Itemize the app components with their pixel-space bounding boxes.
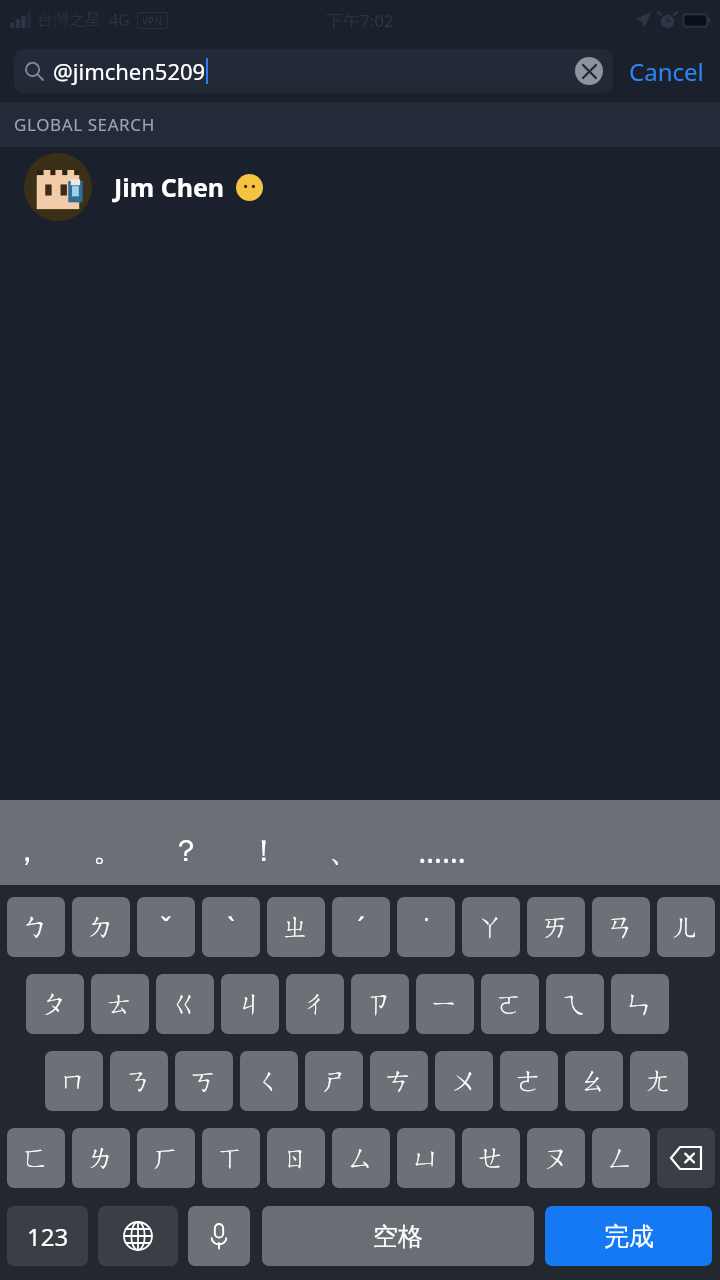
- button[interactable]: ㄗ: [351, 974, 409, 1034]
- button[interactable]: ㄌ: [72, 1128, 130, 1188]
- staticText: ㄍ: [171, 987, 199, 1021]
- button[interactable]: ㄣ: [611, 974, 669, 1034]
- button[interactable]: ㄤ: [630, 1051, 688, 1111]
- staticText: ㄅ: [22, 910, 50, 944]
- button[interactable]: ㄠ: [565, 1051, 623, 1111]
- staticText: ˙: [424, 909, 429, 946]
- staticText: ㄗ: [366, 987, 394, 1021]
- button[interactable]: ㄓ: [267, 897, 325, 957]
- staticText: ㄛ: [496, 987, 524, 1021]
- staticText: ㄇ: [60, 1064, 88, 1098]
- staticText: ㄥ: [607, 1141, 635, 1175]
- button[interactable]: ㄒ: [202, 1128, 260, 1188]
- button[interactable]: ˙: [397, 897, 455, 957]
- button[interactable]: 、: [318, 820, 370, 882]
- button[interactable]: ㄐ: [221, 974, 279, 1034]
- staticText: ㄒ: [217, 1141, 245, 1175]
- button[interactable]: ㄉ: [72, 897, 130, 957]
- staticText: GLOBAL SEARCH: [14, 113, 155, 136]
- staticText: Cancel: [629, 55, 704, 88]
- button[interactable]: Jim Chen: [0, 147, 720, 227]
- button[interactable]: ㄊ: [91, 974, 149, 1034]
- button[interactable]: Change keyboard language: [98, 1206, 178, 1266]
- button[interactable]: ㄝ: [462, 1128, 520, 1188]
- staticText: ㄎ: [190, 1064, 218, 1098]
- button[interactable]: ㄢ: [592, 897, 650, 957]
- staticText: ，: [12, 832, 42, 870]
- button[interactable]: ㄔ: [286, 974, 344, 1034]
- staticText: 。: [93, 832, 123, 870]
- button[interactable]: ？: [160, 820, 212, 882]
- button[interactable]: 空格: [262, 1206, 534, 1266]
- button[interactable]: ㄚ: [462, 897, 520, 957]
- staticText: ㄚ: [477, 910, 505, 944]
- button[interactable]: ˇ: [137, 897, 195, 957]
- button[interactable]: ㄏ: [137, 1128, 195, 1188]
- button[interactable]: Clear text: [575, 57, 603, 85]
- button[interactable]: ㄛ: [481, 974, 539, 1034]
- staticText: ㄋ: [125, 1064, 153, 1098]
- staticText: Jim Chen: [114, 170, 225, 204]
- button[interactable]: Backspace: [657, 1128, 715, 1188]
- staticText: @jimchen5209: [53, 56, 206, 86]
- staticText: ㄘ: [385, 1064, 413, 1098]
- staticText: ㄠ: [580, 1064, 608, 1098]
- staticText: 完成: [604, 1221, 654, 1252]
- button[interactable]: ㄘ: [370, 1051, 428, 1111]
- staticText: ㄖ: [282, 1141, 310, 1175]
- staticText: ㄩ: [412, 1141, 440, 1175]
- button[interactable]: ㄕ: [305, 1051, 363, 1111]
- button[interactable]: @jimchen5209: [14, 49, 613, 93]
- button[interactable]: ˋ: [202, 897, 260, 957]
- staticText: ㄓ: [282, 910, 310, 944]
- staticText: 4G: [109, 9, 130, 31]
- staticText: ˇ: [160, 909, 172, 946]
- button[interactable]: ㄋ: [110, 1051, 168, 1111]
- button[interactable]: ㄆ: [26, 974, 84, 1034]
- staticText: ㄜ: [515, 1064, 543, 1098]
- button[interactable]: ㄨ: [435, 1051, 493, 1111]
- button[interactable]: ！: [238, 820, 290, 882]
- staticText: VPN: [142, 14, 163, 28]
- button[interactable]: ㄇ: [45, 1051, 103, 1111]
- button[interactable]: 。: [82, 820, 134, 882]
- staticText: 、: [329, 832, 359, 870]
- button[interactable]: ……: [416, 820, 468, 882]
- staticText: 下午7:02: [326, 9, 394, 32]
- staticText: ……: [418, 831, 466, 872]
- button[interactable]: ，: [1, 820, 53, 882]
- button[interactable]: ㄑ: [240, 1051, 298, 1111]
- button[interactable]: ㄅ: [7, 897, 65, 957]
- staticText: ㄉ: [87, 910, 115, 944]
- button[interactable]: Voice input: [188, 1206, 250, 1266]
- button[interactable]: Cancel: [613, 55, 720, 88]
- button[interactable]: ㄧ: [416, 974, 474, 1034]
- staticText: ㄡ: [542, 1141, 570, 1175]
- staticText: ㄙ: [347, 1141, 375, 1175]
- staticText: ㄌ: [87, 1141, 115, 1175]
- button[interactable]: ˊ: [332, 897, 390, 957]
- staticText: ㄐ: [236, 987, 264, 1021]
- button[interactable]: ㄟ: [546, 974, 604, 1034]
- staticText: ？: [171, 832, 201, 870]
- button[interactable]: 完成: [545, 1206, 712, 1266]
- staticText: ㄑ: [255, 1064, 283, 1098]
- button[interactable]: ㄡ: [527, 1128, 585, 1188]
- staticText: ㄤ: [645, 1064, 673, 1098]
- button[interactable]: ㄍ: [156, 974, 214, 1034]
- staticText: ㄈ: [22, 1141, 50, 1175]
- button[interactable]: ㄎ: [175, 1051, 233, 1111]
- staticText: ㄏ: [152, 1141, 180, 1175]
- button[interactable]: ㄥ: [592, 1128, 650, 1188]
- button[interactable]: ㄜ: [500, 1051, 558, 1111]
- button[interactable]: ㄙ: [332, 1128, 390, 1188]
- button[interactable]: ㄖ: [267, 1128, 325, 1188]
- button[interactable]: ㄦ: [657, 897, 715, 957]
- button[interactable]: ㄈ: [7, 1128, 65, 1188]
- button[interactable]: ㄩ: [397, 1128, 455, 1188]
- button[interactable]: ㄞ: [527, 897, 585, 957]
- button[interactable]: 123: [7, 1206, 88, 1266]
- staticText: ㄢ: [607, 910, 635, 944]
- staticText: ㄔ: [301, 987, 329, 1021]
- staticText: ˋ: [227, 909, 235, 946]
